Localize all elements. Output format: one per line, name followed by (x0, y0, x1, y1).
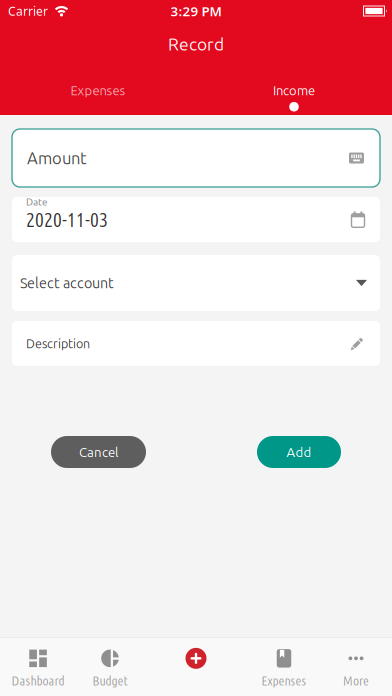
button[interactable]: Income (196, 83, 392, 98)
staticText: Carrier (8, 3, 48, 19)
staticText: Record (168, 34, 224, 54)
staticText: Select account (20, 275, 114, 291)
button[interactable]: Cancel (51, 436, 146, 468)
button[interactable]: Budget (76, 638, 144, 696)
button[interactable]: Select account (12, 255, 380, 311)
staticText: Expenses (70, 83, 125, 98)
staticText: Expenses (261, 673, 306, 688)
button[interactable]: Description (12, 321, 380, 366)
staticText: Dashboard (11, 673, 64, 688)
staticText: Description (26, 336, 90, 351)
staticText: 2020-11-03 (26, 207, 108, 231)
staticText: Add (286, 445, 311, 459)
button[interactable]: Amount (12, 129, 380, 187)
button[interactable]: More (320, 638, 392, 696)
staticText: Date (26, 196, 48, 207)
staticText: More (343, 673, 369, 688)
staticText: Amount (27, 149, 86, 167)
button[interactable]: Date (12, 197, 380, 242)
button[interactable]: Add (257, 436, 341, 468)
staticText: Budget (92, 673, 127, 688)
staticText: 3:29 PM (170, 2, 221, 20)
staticText: Cancel (79, 445, 118, 459)
button[interactable]: Expenses (248, 638, 320, 696)
button[interactable]: Expenses (0, 83, 196, 98)
staticText: Income (273, 83, 315, 98)
button[interactable] (144, 638, 248, 696)
button[interactable]: Dashboard (0, 638, 76, 696)
